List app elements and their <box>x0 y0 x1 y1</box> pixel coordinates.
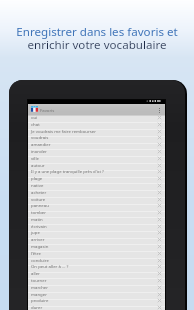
staticText: enrichir votre vocabulaire <box>27 37 167 53</box>
button[interactable]: native <box>28 184 165 191</box>
staticText: chat <box>31 121 40 127</box>
other: Remove tomber <box>158 211 161 214</box>
other: Remove matin <box>158 218 161 221</box>
other: Remove amandier <box>158 143 161 146</box>
button[interactable]: oui <box>28 116 165 123</box>
other: Remove tourner <box>158 279 161 282</box>
other: Remove ville <box>158 157 161 160</box>
button[interactable]: matin <box>28 218 165 225</box>
staticText: arriver <box>31 236 45 242</box>
button[interactable]: arriver <box>28 238 165 245</box>
button[interactable]: produire <box>28 299 165 306</box>
button[interactable]: Il y a une plage tranquille près d'ici ? <box>28 170 165 177</box>
staticText: aller <box>31 270 40 276</box>
button[interactable]: amandier <box>28 143 165 150</box>
other: Remove voiture <box>158 198 161 201</box>
button[interactable]: acheter <box>28 191 165 198</box>
staticText: Il y a une plage tranquille près d'ici ? <box>31 168 104 174</box>
button[interactable]: More options <box>153 104 165 116</box>
other: Remove acheter <box>158 191 161 194</box>
button[interactable]: inonder <box>28 150 165 157</box>
button[interactable]: conduire <box>28 259 165 266</box>
button[interactable]: chat <box>28 123 165 130</box>
button[interactable]: tomber <box>28 211 165 218</box>
other: Remove marcher <box>158 286 161 289</box>
button[interactable]: Je voudrais me faire rembourser <box>28 130 165 137</box>
other: Remove chat <box>158 123 161 126</box>
other: Remove autour <box>158 164 161 167</box>
button[interactable]: tourner <box>28 279 165 286</box>
staticText: durer <box>31 304 43 310</box>
button[interactable]: aller <box>28 272 165 279</box>
other: Remove panneau <box>158 204 161 207</box>
staticText: acheter <box>31 189 47 195</box>
staticText: magasin <box>31 243 49 249</box>
other: Remove arriver <box>158 238 161 241</box>
button[interactable]: On peut aller à ... ? <box>28 265 165 272</box>
staticText: inonder <box>31 148 47 154</box>
button[interactable]: voiture <box>28 198 165 205</box>
other: Remove manger <box>158 293 161 296</box>
other: Remove magasin <box>158 245 161 248</box>
other: Remove voudrais <box>158 136 161 139</box>
other: Remove durer <box>158 306 161 309</box>
other: Remove inonder <box>158 150 161 153</box>
other: Remove conduire <box>158 259 161 262</box>
staticText: Favoris <box>40 107 55 113</box>
button[interactable]: ville <box>28 157 165 164</box>
button[interactable]: jupe <box>28 231 165 238</box>
staticText: voudrais <box>31 134 49 140</box>
other: Remove native <box>158 184 161 187</box>
button[interactable]: voudrais <box>28 136 165 143</box>
staticText: tourner <box>31 277 47 283</box>
other: Remove produire <box>158 299 161 302</box>
staticText: native <box>31 182 44 188</box>
button[interactable]: panneau <box>28 204 165 211</box>
staticText: écrivain <box>31 223 47 229</box>
button[interactable]: l'être <box>28 252 165 259</box>
other: Remove Je voudrais me faire rembourser <box>158 130 161 133</box>
staticText: produire <box>31 297 49 303</box>
button[interactable]: manger <box>28 293 165 300</box>
staticText: ville <box>31 155 39 161</box>
button[interactable]: plage <box>28 177 165 184</box>
button[interactable]: autour <box>28 164 165 171</box>
staticText: Enregistrer dans les favoris et <box>16 24 178 40</box>
button[interactable]: écrivain <box>28 225 165 232</box>
other: Remove jupe <box>158 231 161 234</box>
other: Remove Il y a une plage tranquille près … <box>158 170 161 173</box>
button[interactable]: magasin <box>28 245 165 252</box>
staticText: l'être <box>31 250 41 256</box>
other: Remove aller <box>158 272 161 275</box>
staticText: oui <box>31 114 38 120</box>
staticText: conduire <box>31 257 49 263</box>
staticText: amandier <box>31 141 51 147</box>
staticText: On peut aller à ... ? <box>31 263 69 269</box>
staticText: autour <box>31 162 45 168</box>
staticText: plage <box>31 175 43 181</box>
other: Remove écrivain <box>158 225 161 228</box>
other: Remove oui <box>158 116 161 119</box>
staticText: matin <box>31 216 43 222</box>
other: Remove plage <box>158 177 161 180</box>
staticText: marcher <box>31 284 49 290</box>
staticText: manger <box>31 291 47 297</box>
staticText: panneau <box>31 202 49 208</box>
button[interactable]: durer <box>28 306 165 310</box>
staticText: tomber <box>31 209 47 215</box>
staticText: jupe <box>31 229 40 235</box>
staticText: voiture <box>31 196 46 202</box>
other: Remove On peut aller à ... ? <box>158 265 161 268</box>
button[interactable]: marcher <box>28 286 165 293</box>
staticText: Je voudrais me faire rembourser <box>31 128 97 134</box>
other: Remove l'être <box>158 252 161 255</box>
